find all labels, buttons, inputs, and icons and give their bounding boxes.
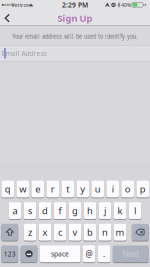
button[interactable]: g [69,202,81,219]
button[interactable]: Emoji [21,245,37,262]
button[interactable]: s [24,202,36,219]
button[interactable]: Back [4,14,10,23]
button[interactable]: o [121,181,134,197]
staticText: Your email address will be used to ident… [12,33,138,40]
staticText: 40% [121,1,131,8]
staticText: 2:29 PM [62,0,88,9]
staticText: k [117,204,122,217]
staticText: @ [86,248,93,259]
staticText: f [58,204,61,217]
button[interactable]: space [40,245,80,262]
button[interactable]: q [1,181,14,197]
staticText: Email Address [1,49,46,58]
staticText: . [103,248,105,259]
button[interactable]: y [76,181,89,197]
staticText: e [35,183,40,195]
staticText: v [72,226,77,238]
staticText: s [28,204,32,217]
button[interactable]: b [84,224,96,241]
staticText: space [51,249,69,258]
button[interactable]: . [98,245,110,262]
staticText: h [87,204,93,217]
button[interactable]: e [31,181,44,197]
staticText: y [80,183,85,195]
button[interactable]: r [46,181,59,197]
button[interactable]: l [129,202,141,219]
staticText: Sign Up [57,12,92,24]
staticText: d [42,204,48,217]
button[interactable]: @ [83,245,95,262]
staticText: x [42,226,47,238]
staticText: a [12,204,17,217]
button[interactable]: u [91,181,104,197]
button[interactable]: d [39,202,51,219]
staticText: z [28,226,32,238]
button[interactable]: c [54,224,66,241]
button[interactable]: w [16,181,29,197]
staticText: n [102,226,108,238]
staticText: j [104,204,106,217]
button[interactable]: Shift [1,224,18,241]
staticText: q [5,183,11,195]
staticText: c [58,226,62,238]
staticText: Next [122,248,139,259]
button[interactable]: a [9,202,21,219]
staticText: l [134,204,136,217]
button[interactable]: t [61,181,74,197]
staticText: r [51,183,55,195]
staticText: w [19,183,26,195]
button[interactable]: p [136,181,149,197]
button[interactable]: k [114,202,126,219]
staticText: m [115,226,124,238]
button[interactable]: x [39,224,51,241]
staticText: i [112,183,114,195]
button[interactable]: j [99,202,111,219]
staticText: 123 [4,249,16,258]
button[interactable]: Next [113,245,149,262]
staticText: p [140,183,146,195]
button[interactable]: n [99,224,111,241]
button[interactable]: f [54,202,66,219]
button[interactable]: m [114,224,126,241]
button[interactable]: 123 [1,245,18,262]
button[interactable]: Delete [132,224,149,241]
button[interactable]: z [24,224,36,241]
button[interactable]: i [106,181,119,197]
button[interactable]: Email Address [0,45,150,61]
button[interactable]: h [84,202,96,219]
staticText: g [72,204,78,217]
button[interactable]: v [69,224,81,241]
staticText: b [87,226,93,238]
staticText: u [95,183,101,195]
staticText: o [125,183,131,195]
staticText: t [66,183,69,195]
staticText: Verizon [11,1,29,8]
